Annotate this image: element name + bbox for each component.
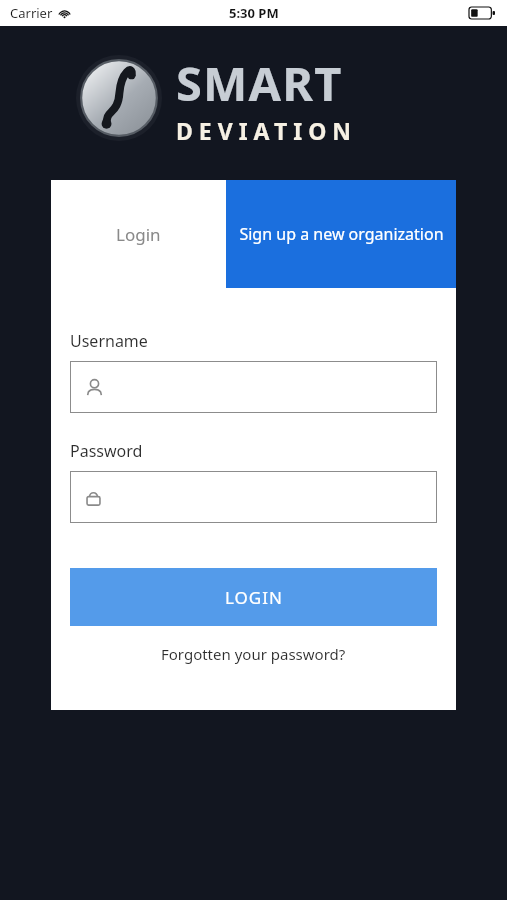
staticText: LOGIN [225,586,283,609]
other: Password [85,489,102,506]
button[interactable]: LOGIN [70,568,437,626]
staticText: DEVIATION [176,115,358,146]
button[interactable]: Sign up a new organization [226,180,456,288]
button[interactable]: Username [70,361,437,413]
button[interactable]: Forgotten your password? [70,644,437,664]
button[interactable]: Login [51,180,226,288]
staticText: 5:30 PM [229,4,279,22]
staticText: Password [70,440,143,462]
staticText: Carrier [10,4,53,22]
staticText: Sign up a new organization [239,223,444,245]
button[interactable]: Password [70,471,437,523]
staticText: SMART [176,51,343,115]
other: Username [85,378,104,397]
staticText: Login [116,223,161,246]
staticText: Username [70,330,148,352]
staticText: Forgotten your password? [161,644,346,664]
